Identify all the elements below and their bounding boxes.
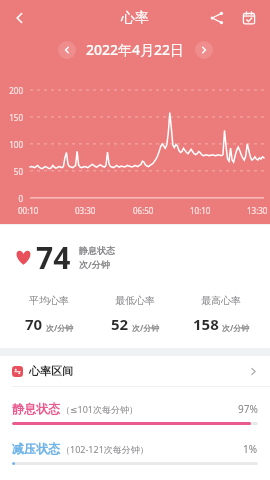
staticText: 2022年4月22日: [86, 40, 185, 59]
staticText: （≤101次每分钟）: [61, 403, 138, 415]
staticText: 10:10: [190, 205, 211, 216]
button[interactable]: Calendar: [234, 3, 264, 33]
staticText: 静息状态: [79, 245, 115, 256]
staticText: 最高心率: [201, 294, 241, 307]
button[interactable]: 心率区间: [0, 356, 270, 386]
staticText: 次/分钟: [222, 322, 250, 333]
staticText: 00:10: [18, 205, 39, 216]
button[interactable]: Previous day: [58, 41, 76, 59]
staticText: 50: [0, 166, 23, 177]
staticText: 70: [25, 314, 43, 334]
staticText: （102-121次每分钟）: [61, 443, 149, 455]
staticText: 心率: [121, 9, 149, 27]
staticText: 0: [0, 193, 23, 204]
staticText: 13:30: [247, 205, 268, 216]
staticText: 150: [0, 112, 23, 123]
staticText: 次/分钟: [132, 322, 160, 333]
staticText: 200: [0, 85, 23, 96]
staticText: 52: [111, 314, 129, 334]
staticText: 158: [193, 314, 219, 334]
staticText: 次/分钟: [46, 322, 74, 333]
staticText: 减压状态: [12, 441, 60, 456]
button[interactable]: 减压状态: [0, 441, 270, 465]
staticText: 次/分钟: [79, 258, 110, 270]
button[interactable]: Share: [202, 3, 232, 33]
button[interactable]: Back: [4, 2, 36, 34]
staticText: 74: [36, 237, 71, 278]
button[interactable]: Next day: [195, 41, 213, 59]
staticText: 100: [0, 139, 23, 150]
staticText: 97%: [238, 402, 258, 416]
staticText: 06:50: [133, 205, 154, 216]
staticText: 平均心率: [29, 294, 69, 307]
button[interactable]: 静息状态: [0, 401, 270, 425]
staticText: 最低心率: [115, 294, 155, 307]
staticText: 03:30: [75, 205, 96, 216]
staticText: 1%: [243, 442, 258, 456]
staticText: 静息状态: [12, 401, 60, 416]
staticText: 心率区间: [29, 364, 73, 378]
